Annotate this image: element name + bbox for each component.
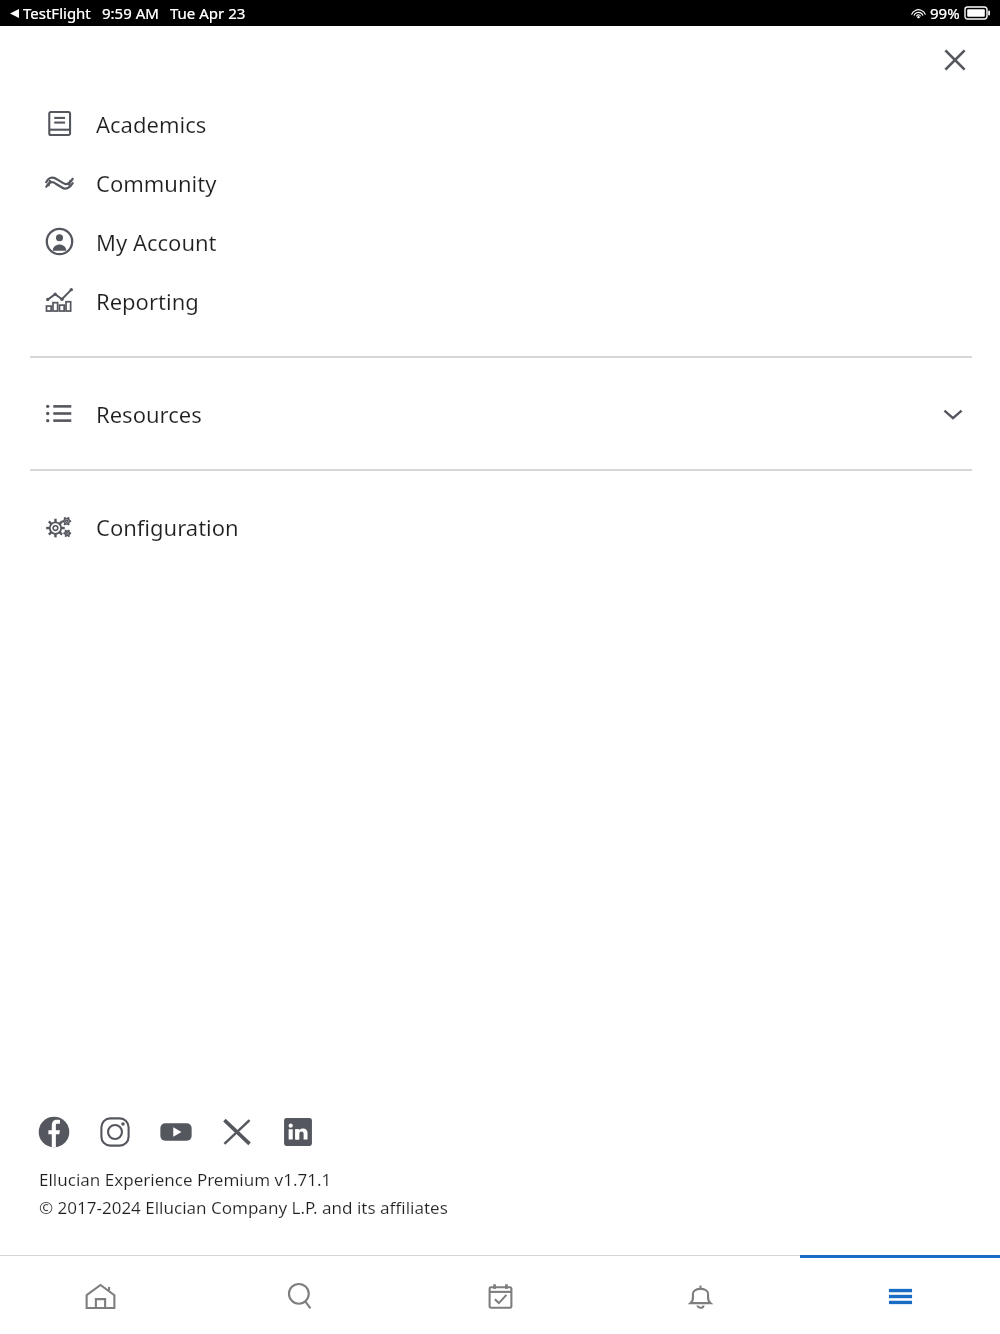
button[interactable]: My Account xyxy=(0,212,1000,271)
button[interactable]: Search xyxy=(200,1258,400,1334)
staticText: Tue Apr 23 xyxy=(170,3,246,23)
button[interactable]: Facebook xyxy=(36,1114,72,1150)
staticText: Community xyxy=(96,168,217,198)
staticText: Configuration xyxy=(96,512,239,542)
button[interactable]: Menu xyxy=(800,1258,1000,1334)
button[interactable]: Home xyxy=(0,1258,200,1334)
button[interactable]: Close xyxy=(932,37,978,83)
button[interactable]: Notifications xyxy=(600,1258,800,1334)
button[interactable]: Instagram xyxy=(97,1114,133,1150)
button[interactable]: Reporting xyxy=(0,271,1000,330)
button[interactable]: Resources xyxy=(0,384,1000,443)
button[interactable]: LinkedIn xyxy=(280,1114,316,1150)
staticText: Ellucian Experience Premium v1.71.1 xyxy=(39,1168,332,1191)
staticText: My Account xyxy=(96,227,217,257)
staticText: Academics xyxy=(96,109,207,139)
staticText: Reporting xyxy=(96,286,199,316)
staticText: Resources xyxy=(96,399,202,429)
staticText: 9:59 AM xyxy=(102,3,159,23)
button[interactable]: Community xyxy=(0,153,1000,212)
button[interactable]: Configuration xyxy=(0,497,1000,556)
button[interactable]: Tasks xyxy=(400,1258,600,1334)
staticText: © 2017-2024 Ellucian Company L.P. and it… xyxy=(39,1196,448,1219)
staticText: 99% xyxy=(930,3,960,23)
button[interactable]: YouTube xyxy=(158,1114,194,1150)
button[interactable]: Academics xyxy=(0,94,1000,153)
staticText: TestFlight xyxy=(23,3,91,23)
button[interactable]: X xyxy=(219,1114,255,1150)
